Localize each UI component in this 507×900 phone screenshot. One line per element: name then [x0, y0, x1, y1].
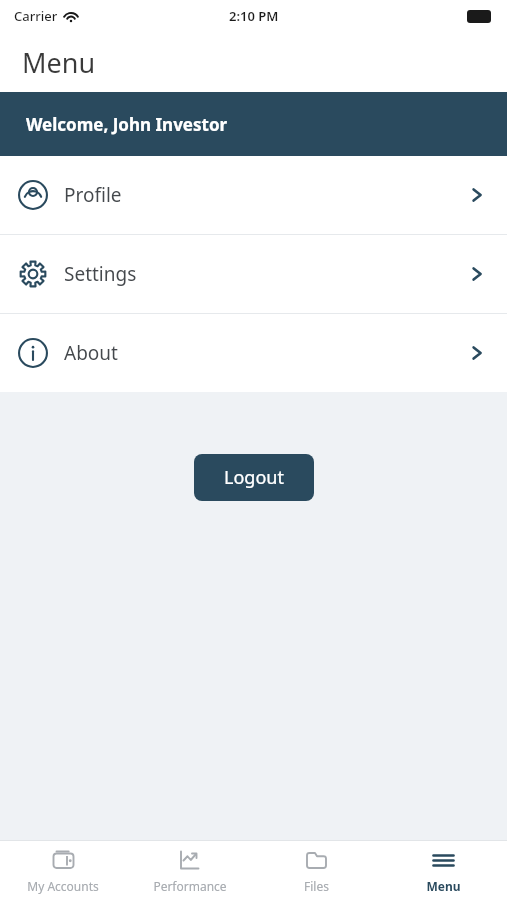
button[interactable]: Files — [253, 841, 380, 900]
staticText: Profile — [64, 182, 122, 208]
other: Menu — [431, 848, 456, 873]
staticText: Settings — [64, 261, 137, 287]
staticText: Logout — [224, 465, 284, 490]
other: Files — [304, 848, 329, 873]
button[interactable]: Menu — [380, 841, 507, 900]
button[interactable]: Profile — [0, 156, 507, 234]
staticText: My Accounts — [27, 878, 99, 894]
staticText: Menu — [426, 878, 461, 894]
button[interactable]: Performance — [126, 841, 253, 900]
button[interactable]: Logout — [194, 454, 314, 501]
staticText: Carrier — [14, 7, 58, 25]
other: Performance — [177, 848, 202, 873]
other: My Accounts — [51, 848, 76, 873]
staticText: Welcome, John Investor — [26, 113, 228, 136]
button[interactable]: My Accounts — [0, 841, 126, 900]
staticText: 2:10 PM — [229, 7, 279, 25]
staticText: Files — [304, 878, 329, 894]
staticText: About — [64, 340, 118, 366]
staticText: Performance — [153, 878, 227, 894]
button[interactable]: Settings — [0, 235, 507, 313]
staticText: Menu — [22, 44, 96, 81]
button[interactable]: About — [0, 314, 507, 392]
